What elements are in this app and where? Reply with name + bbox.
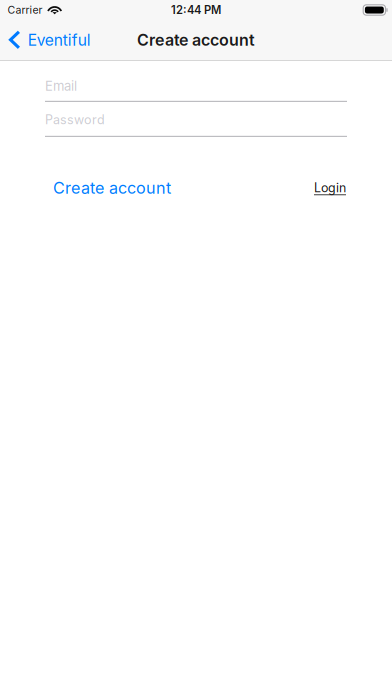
staticText: Email [45, 78, 77, 94]
staticText: Password [45, 112, 105, 127]
button[interactable]: Eventiful [0, 20, 103, 60]
staticText: Carrier [7, 4, 42, 16]
button[interactable]: Login [306, 177, 347, 198]
staticText: 12:44 PM [171, 3, 221, 17]
staticText: Create account [137, 30, 255, 50]
button[interactable]: Create account [45, 175, 179, 200]
staticText: Eventiful [28, 31, 91, 49]
staticText: Create account [53, 178, 171, 197]
staticText: Login [314, 180, 346, 195]
